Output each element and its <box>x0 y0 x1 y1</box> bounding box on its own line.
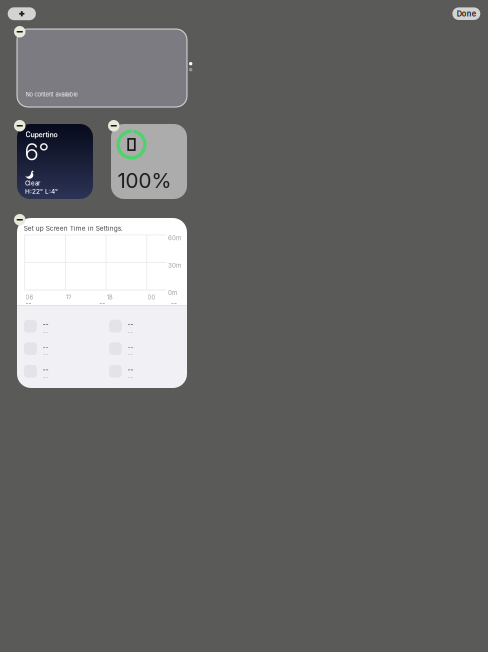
staticText: 30m <box>168 262 181 269</box>
staticText: Cupertino <box>25 130 57 139</box>
button[interactable]: Remove widget <box>14 214 25 225</box>
staticText: -- <box>42 366 48 374</box>
staticText: 0m <box>168 289 177 296</box>
button[interactable]: Remove widget <box>14 120 25 131</box>
staticText: H:22° L:4° <box>25 187 58 195</box>
staticText: -- <box>42 321 48 329</box>
staticText: -- <box>127 351 133 358</box>
staticText: -- <box>42 343 48 351</box>
button[interactable]: Remove widget <box>108 120 119 131</box>
staticText: -- <box>127 366 133 374</box>
button[interactable]: Add widget <box>8 7 36 20</box>
button[interactable]: Cupertino <box>17 124 93 199</box>
staticText: 60m <box>168 234 181 242</box>
staticText: -- <box>25 299 31 307</box>
staticText: Done <box>457 9 476 18</box>
staticText: -- <box>42 373 48 380</box>
button[interactable]: Remove widget <box>14 26 25 37</box>
staticText: 12 <box>66 294 72 301</box>
staticText: -- <box>99 299 105 307</box>
staticText: -- <box>42 328 48 335</box>
staticText: 6° <box>24 137 49 166</box>
button[interactable]: Set up Screen Time in Settings. <box>17 218 187 388</box>
staticText: -- <box>171 299 177 307</box>
staticText: -- <box>127 328 133 335</box>
staticText: -- <box>127 343 133 351</box>
staticText: Set up Screen Time in Settings. <box>24 224 123 232</box>
staticText: -- <box>127 321 133 329</box>
staticText: 00 <box>148 294 156 301</box>
staticText: No content available <box>25 91 77 98</box>
staticText: 06 <box>25 294 33 301</box>
staticText: -- <box>127 373 133 380</box>
button[interactable]: 100% <box>111 124 187 199</box>
staticText: 18 <box>107 294 113 301</box>
button[interactable]: No content available <box>17 29 187 107</box>
staticText: 100% <box>117 168 171 193</box>
staticText: -- <box>42 351 48 358</box>
button[interactable]: Done <box>452 7 480 20</box>
staticText: Clear <box>25 179 40 187</box>
